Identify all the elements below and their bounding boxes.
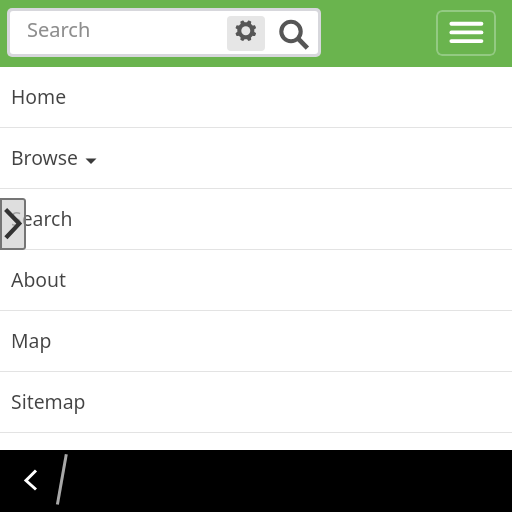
- staticText: Sitemap: [11, 388, 86, 414]
- button[interactable]: Expand sidebar: [0, 198, 26, 250]
- button[interactable]: Map: [0, 311, 512, 371]
- staticText: Home: [11, 83, 67, 109]
- button[interactable]: Sitemap: [0, 372, 512, 432]
- staticText: Search: [27, 16, 91, 43]
- staticText: Search: [11, 205, 73, 231]
- button[interactable]: Menu: [436, 10, 496, 56]
- staticText: Browse: [11, 144, 79, 170]
- button[interactable]: Home: [0, 67, 512, 127]
- button[interactable]: Search: [0, 189, 512, 249]
- staticText: About: [11, 266, 67, 292]
- button[interactable]: Search: [10, 11, 318, 54]
- button[interactable]: Back: [18, 462, 46, 490]
- button[interactable]: Settings: [227, 16, 265, 51]
- staticText: Map: [11, 327, 52, 353]
- button[interactable]: About: [0, 250, 512, 310]
- button[interactable]: Browse: [0, 128, 512, 188]
- button[interactable]: Search: [271, 12, 313, 54]
